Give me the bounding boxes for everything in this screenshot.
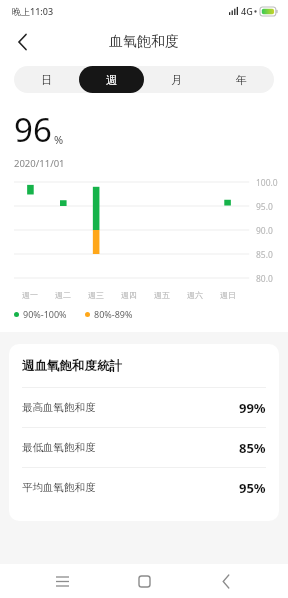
staticText: 4G xyxy=(241,5,253,17)
staticText: 80.0 xyxy=(256,273,273,285)
staticText: 週血氧飽和度統計 xyxy=(22,358,122,374)
staticText: 99% xyxy=(239,399,266,417)
staticText: 最高血氧飽和度 xyxy=(22,401,239,414)
button[interactable]: 日 xyxy=(14,66,79,93)
staticText: 年 xyxy=(236,73,247,87)
staticText: 96 xyxy=(14,107,52,152)
staticText: 最低血氧飽和度 xyxy=(22,441,239,454)
button[interactable]: Recent apps xyxy=(42,564,82,598)
button[interactable]: 平均血氧飽和度 xyxy=(22,467,266,507)
button[interactable]: 年 xyxy=(209,66,274,93)
button[interactable]: Back xyxy=(206,564,246,598)
staticText: 血氧飽和度 xyxy=(109,33,179,51)
staticText: 平均血氧飽和度 xyxy=(22,481,239,494)
staticText: 週五 xyxy=(154,290,170,300)
staticText: 週四 xyxy=(121,290,137,300)
staticText: 週 xyxy=(106,73,117,87)
staticText: 90%-100% xyxy=(23,308,67,320)
staticText: 95.0 xyxy=(256,201,273,213)
staticText: 100.0 xyxy=(256,177,278,189)
staticText: 80%-89% xyxy=(94,308,133,320)
staticText: 週六 xyxy=(187,290,203,300)
staticText: 85.0 xyxy=(256,249,273,261)
staticText: 95% xyxy=(239,479,266,497)
staticText: 晚上11:03 xyxy=(12,5,54,17)
staticText: 2020/11/01 xyxy=(14,157,65,170)
button[interactable]: Home xyxy=(124,564,164,598)
staticText: 週一 xyxy=(22,290,38,300)
staticText: % xyxy=(54,132,64,147)
staticText: 90.0 xyxy=(256,225,273,237)
staticText: 月 xyxy=(171,73,182,87)
staticText: 週日 xyxy=(220,290,236,300)
button[interactable]: 最低血氧飽和度 xyxy=(22,427,266,467)
button[interactable]: 週 xyxy=(79,66,144,93)
button[interactable]: 月 xyxy=(144,66,209,93)
staticText: 週二 xyxy=(55,290,71,300)
button[interactable]: 最高血氧飽和度 xyxy=(22,387,266,427)
staticText: 日 xyxy=(41,73,52,87)
staticText: 週三 xyxy=(88,290,104,300)
staticText: 85% xyxy=(239,439,266,457)
button[interactable]: Back xyxy=(4,24,40,60)
